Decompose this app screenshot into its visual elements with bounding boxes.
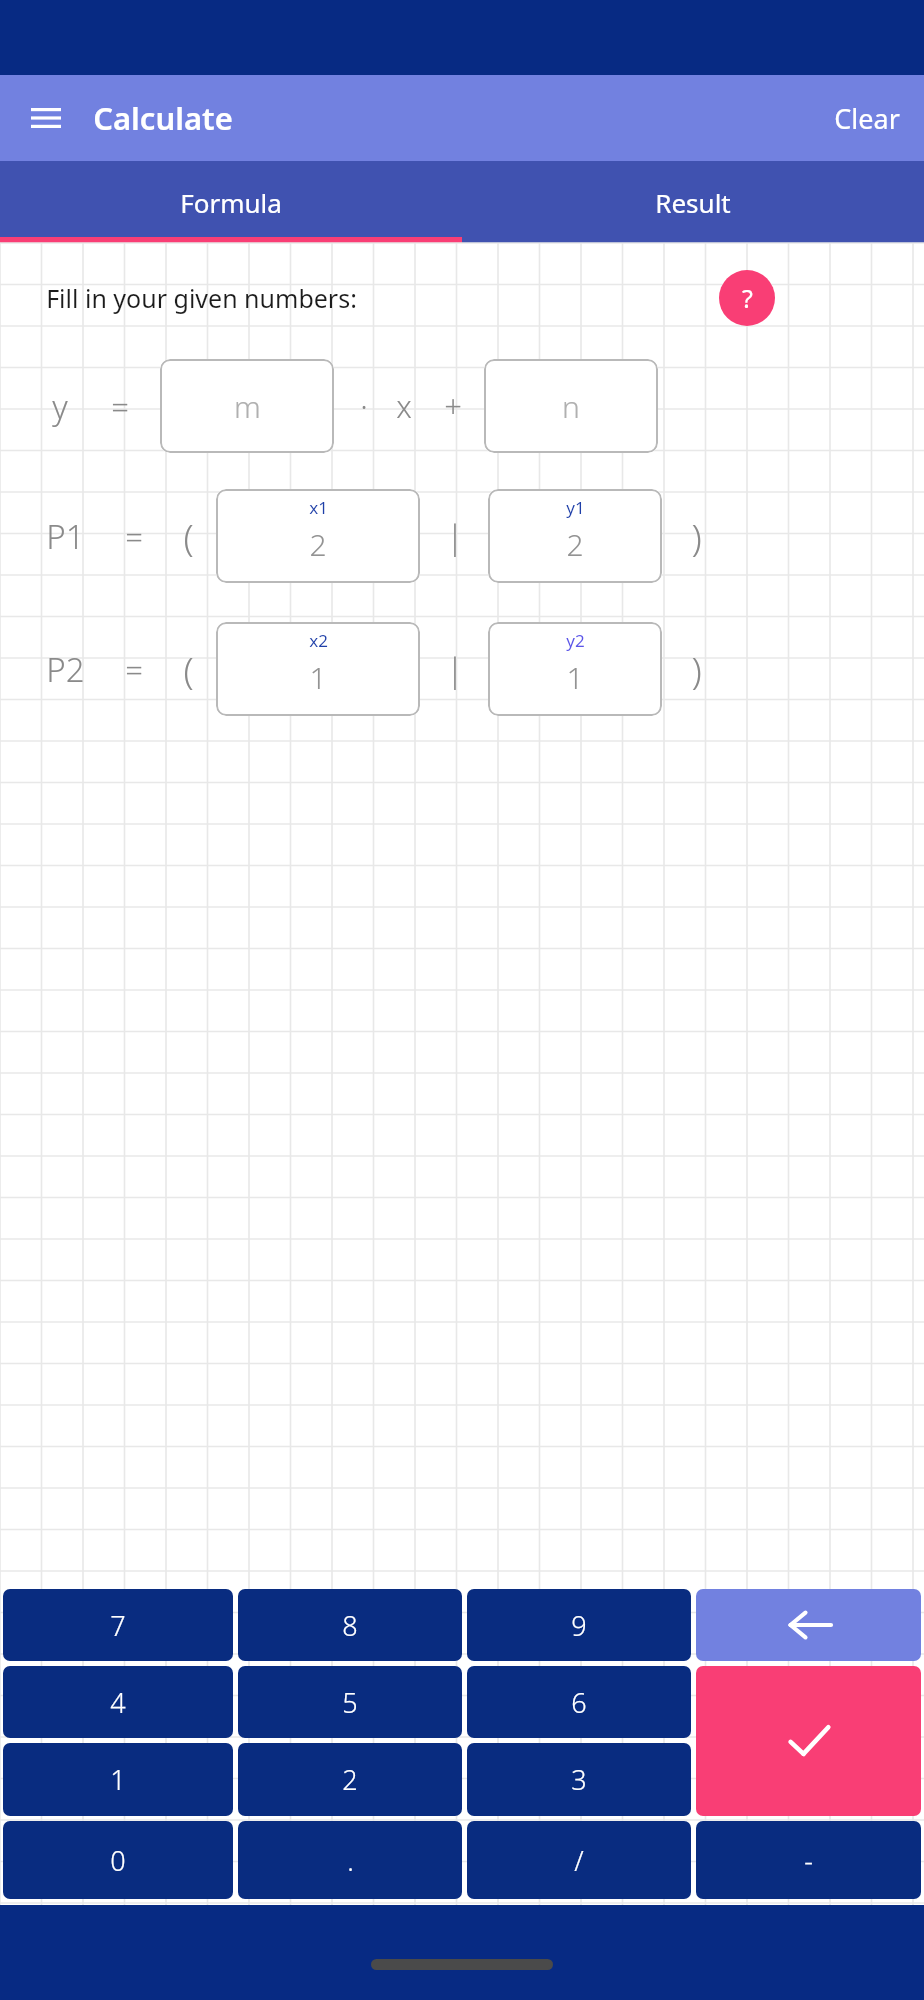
button[interactable]: x2 [216, 622, 420, 716]
staticText: Fill in your given numbers: [46, 281, 357, 315]
staticText: 2 [309, 524, 327, 565]
staticText: x [396, 385, 412, 427]
staticText: P2 [46, 647, 85, 692]
staticText: | [446, 647, 464, 692]
staticText: = [125, 515, 143, 557]
button[interactable]: Help [719, 270, 775, 326]
button[interactable]: Result [462, 161, 924, 243]
staticText: ( [183, 511, 194, 561]
staticText: n [562, 386, 580, 427]
staticText: P1 [46, 514, 85, 559]
button[interactable]: - [696, 1821, 921, 1899]
button[interactable]: m [160, 359, 334, 453]
staticText: ) [691, 644, 702, 694]
staticText: 3 [571, 1761, 587, 1798]
button[interactable]: Clear [810, 75, 924, 161]
staticText: m [234, 386, 261, 427]
staticText: 1 [309, 657, 327, 698]
staticText: 8 [342, 1607, 358, 1644]
staticText: - [804, 1842, 813, 1879]
staticText: y2 [566, 629, 585, 652]
staticText: 1 [110, 1761, 126, 1798]
button[interactable]: y1 [488, 489, 662, 583]
staticText: ? [742, 281, 753, 315]
button[interactable]: 5 [238, 1666, 462, 1738]
staticText: 4 [110, 1684, 126, 1721]
staticText: | [446, 514, 464, 559]
button[interactable]: n [484, 359, 658, 453]
staticText: y1 [566, 496, 585, 519]
staticText: 0 [110, 1842, 126, 1879]
staticText: 1 [566, 657, 584, 698]
staticText: ) [691, 511, 702, 561]
button[interactable]: y2 [488, 622, 662, 716]
button[interactable]: 2 [238, 1743, 462, 1816]
button[interactable]: 1 [3, 1743, 233, 1816]
staticText: Result [655, 185, 731, 220]
staticText: ( [183, 644, 194, 694]
staticText: · [360, 385, 368, 427]
staticText: x2 [309, 629, 328, 652]
button[interactable]: x1 [216, 489, 420, 583]
staticText: / [574, 1842, 584, 1879]
staticText: x1 [309, 496, 328, 519]
button[interactable]: 3 [467, 1743, 691, 1816]
button[interactable]: Backspace [696, 1589, 921, 1661]
staticText: Formula [180, 185, 282, 220]
button[interactable]: 9 [467, 1589, 691, 1661]
staticText: 2 [566, 524, 584, 565]
button[interactable]: Open navigation menu [18, 90, 74, 146]
button[interactable]: Formula [0, 161, 462, 243]
button[interactable]: / [467, 1821, 691, 1899]
staticText: + [444, 385, 462, 427]
staticText: Clear [834, 100, 900, 137]
button[interactable]: . [238, 1821, 462, 1899]
staticText: 6 [571, 1684, 587, 1721]
button[interactable]: 4 [3, 1666, 233, 1738]
staticText: 9 [571, 1607, 587, 1644]
staticText: y [52, 384, 68, 429]
button[interactable]: Confirm [696, 1666, 921, 1816]
staticText: 7 [110, 1607, 126, 1644]
button[interactable]: 0 [3, 1821, 233, 1899]
staticText: Calculate [93, 97, 233, 139]
staticText: . [347, 1842, 354, 1879]
staticText: 5 [342, 1684, 358, 1721]
button[interactable]: 6 [467, 1666, 691, 1738]
button[interactable]: 8 [238, 1589, 462, 1661]
staticText: = [111, 385, 129, 427]
staticText: = [125, 648, 143, 690]
button[interactable]: 7 [3, 1589, 233, 1661]
staticText: 2 [342, 1761, 358, 1798]
